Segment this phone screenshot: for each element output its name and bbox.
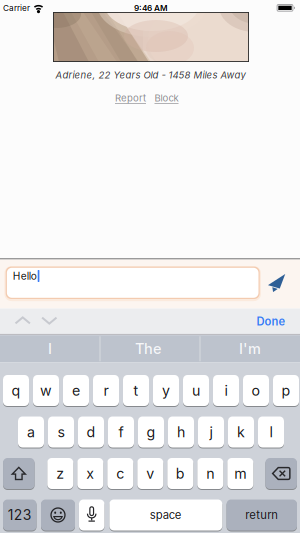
staticText: n	[206, 465, 214, 482]
button[interactable]: k	[228, 416, 254, 448]
button[interactable]: The	[99, 336, 197, 362]
button[interactable]: Dictate	[79, 499, 104, 531]
staticText: I'm	[239, 340, 261, 357]
staticText: b	[176, 465, 185, 482]
button[interactable]: m	[227, 457, 253, 489]
button[interactable]: I	[1, 336, 99, 362]
staticText: Done	[256, 315, 285, 328]
staticText: z	[56, 465, 64, 482]
button[interactable]: Numbers	[3, 499, 36, 531]
button[interactable]: h	[168, 416, 194, 448]
button[interactable]: z	[47, 457, 73, 489]
button[interactable]: l	[258, 416, 284, 448]
staticText: w	[40, 382, 52, 399]
staticText: j	[209, 423, 212, 441]
staticText: p	[281, 382, 290, 399]
button[interactable]: Block	[154, 92, 178, 104]
staticText: v	[146, 465, 154, 482]
button[interactable]: f	[108, 416, 134, 448]
button[interactable]: space	[109, 499, 222, 531]
button[interactable]: o	[243, 374, 269, 406]
staticText: f	[118, 423, 123, 441]
staticText: I	[48, 340, 52, 357]
staticText: h	[177, 423, 185, 441]
button[interactable]: Next field	[39, 314, 59, 326]
staticText: k	[237, 423, 245, 441]
button[interactable]: v	[137, 457, 163, 489]
staticText: e	[72, 382, 80, 399]
staticText: u	[192, 382, 200, 399]
button[interactable]: Previous field	[13, 314, 33, 326]
staticText: y	[162, 382, 170, 399]
button[interactable]: u	[183, 374, 209, 406]
staticText: r	[103, 382, 108, 399]
button[interactable]: Shift	[3, 457, 35, 489]
staticText: a	[27, 423, 35, 441]
staticText: o	[251, 382, 260, 399]
button[interactable]: Message	[4, 265, 261, 301]
staticText: Report	[115, 92, 146, 104]
staticText: 123	[8, 506, 32, 523]
staticText: 9:46 AM	[134, 3, 168, 13]
button[interactable]: j	[198, 416, 224, 448]
button[interactable]: a	[18, 416, 44, 448]
button[interactable]: Emoji	[41, 499, 75, 531]
staticText: Block	[154, 92, 178, 104]
staticText: Adriene, 22 Years Old - 1458 Miles Away	[55, 69, 245, 81]
button[interactable]: Done	[256, 315, 285, 328]
button[interactable]: r	[93, 374, 119, 406]
button[interactable]: I'm	[201, 336, 299, 362]
button[interactable]: x	[77, 457, 103, 489]
staticText: Carrier	[3, 3, 30, 13]
button[interactable]: g	[138, 416, 164, 448]
button[interactable]: e	[63, 374, 89, 406]
staticText: x	[86, 465, 94, 482]
staticText: i	[224, 382, 227, 399]
staticText: s	[57, 423, 64, 441]
staticText: t	[133, 382, 138, 399]
staticText: Hello	[13, 270, 37, 282]
staticText: c	[116, 465, 124, 482]
staticText: m	[234, 465, 246, 482]
staticText: d	[86, 423, 95, 441]
staticText: l	[269, 423, 272, 441]
button[interactable]: n	[197, 457, 223, 489]
button[interactable]: i	[213, 374, 239, 406]
button[interactable]: return	[227, 499, 297, 531]
staticText: g	[146, 423, 155, 441]
button[interactable]: b	[167, 457, 193, 489]
button[interactable]: w	[33, 374, 59, 406]
button[interactable]: q	[3, 374, 29, 406]
button[interactable]: d	[78, 416, 104, 448]
staticText: space	[150, 508, 182, 522]
button[interactable]: y	[153, 374, 179, 406]
button[interactable]: Delete	[265, 457, 297, 489]
button[interactable]: s	[48, 416, 74, 448]
staticText: The	[135, 340, 162, 357]
button[interactable]: Send	[268, 274, 285, 292]
button[interactable]: p	[273, 374, 299, 406]
staticText: q	[11, 382, 20, 399]
button[interactable]: t	[123, 374, 149, 406]
button[interactable]: c	[107, 457, 133, 489]
button[interactable]: Report	[115, 92, 146, 104]
staticText: return	[245, 508, 278, 522]
